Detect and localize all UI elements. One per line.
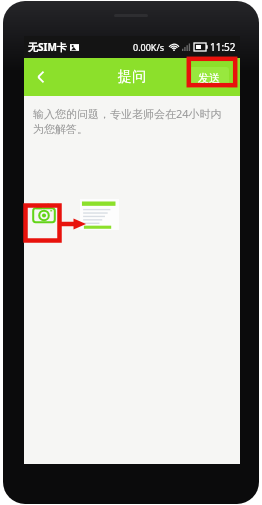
staticText: 发送 bbox=[198, 71, 220, 85]
button[interactable]: Attached image bbox=[80, 199, 119, 230]
staticText: 11:52 bbox=[210, 40, 236, 54]
staticText: 无SIM卡 bbox=[28, 40, 67, 54]
staticText: 输入您的问题，专业老师会在24小时内为您解答。 bbox=[33, 106, 231, 136]
button[interactable]: 发送 bbox=[189, 67, 229, 88]
button[interactable]: Back bbox=[24, 60, 58, 94]
button[interactable]: Add photo bbox=[27, 197, 61, 231]
staticText: 0.00K/s bbox=[133, 41, 165, 53]
staticText: 提问 bbox=[118, 68, 146, 86]
